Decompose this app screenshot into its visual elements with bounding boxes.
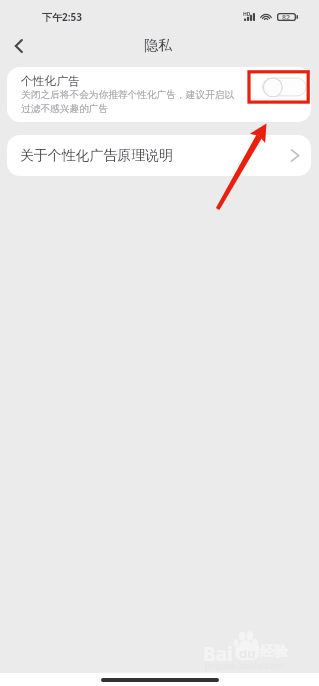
- staticText: 隐私: [144, 37, 172, 55]
- button[interactable]: 关于个性化广告原理说明: [7, 135, 311, 176]
- staticText: 关于个性化广告原理说明: [20, 147, 173, 165]
- staticText: du: [239, 644, 256, 660]
- button[interactable]: Personalized ads toggle: [262, 77, 306, 97]
- staticText: 82: [282, 13, 291, 23]
- staticText: Bai: [203, 641, 233, 667]
- staticText: HD: [243, 11, 251, 18]
- staticText: 关闭之后将不会为你推荐个性化广告，建议开启以 过滤不感兴趣的广告: [21, 89, 235, 115]
- staticText: 个性化广告: [21, 74, 80, 89]
- staticText: 经验: [260, 643, 288, 661]
- staticText: 下午2:53: [42, 10, 82, 24]
- button[interactable]: Back: [7, 34, 31, 58]
